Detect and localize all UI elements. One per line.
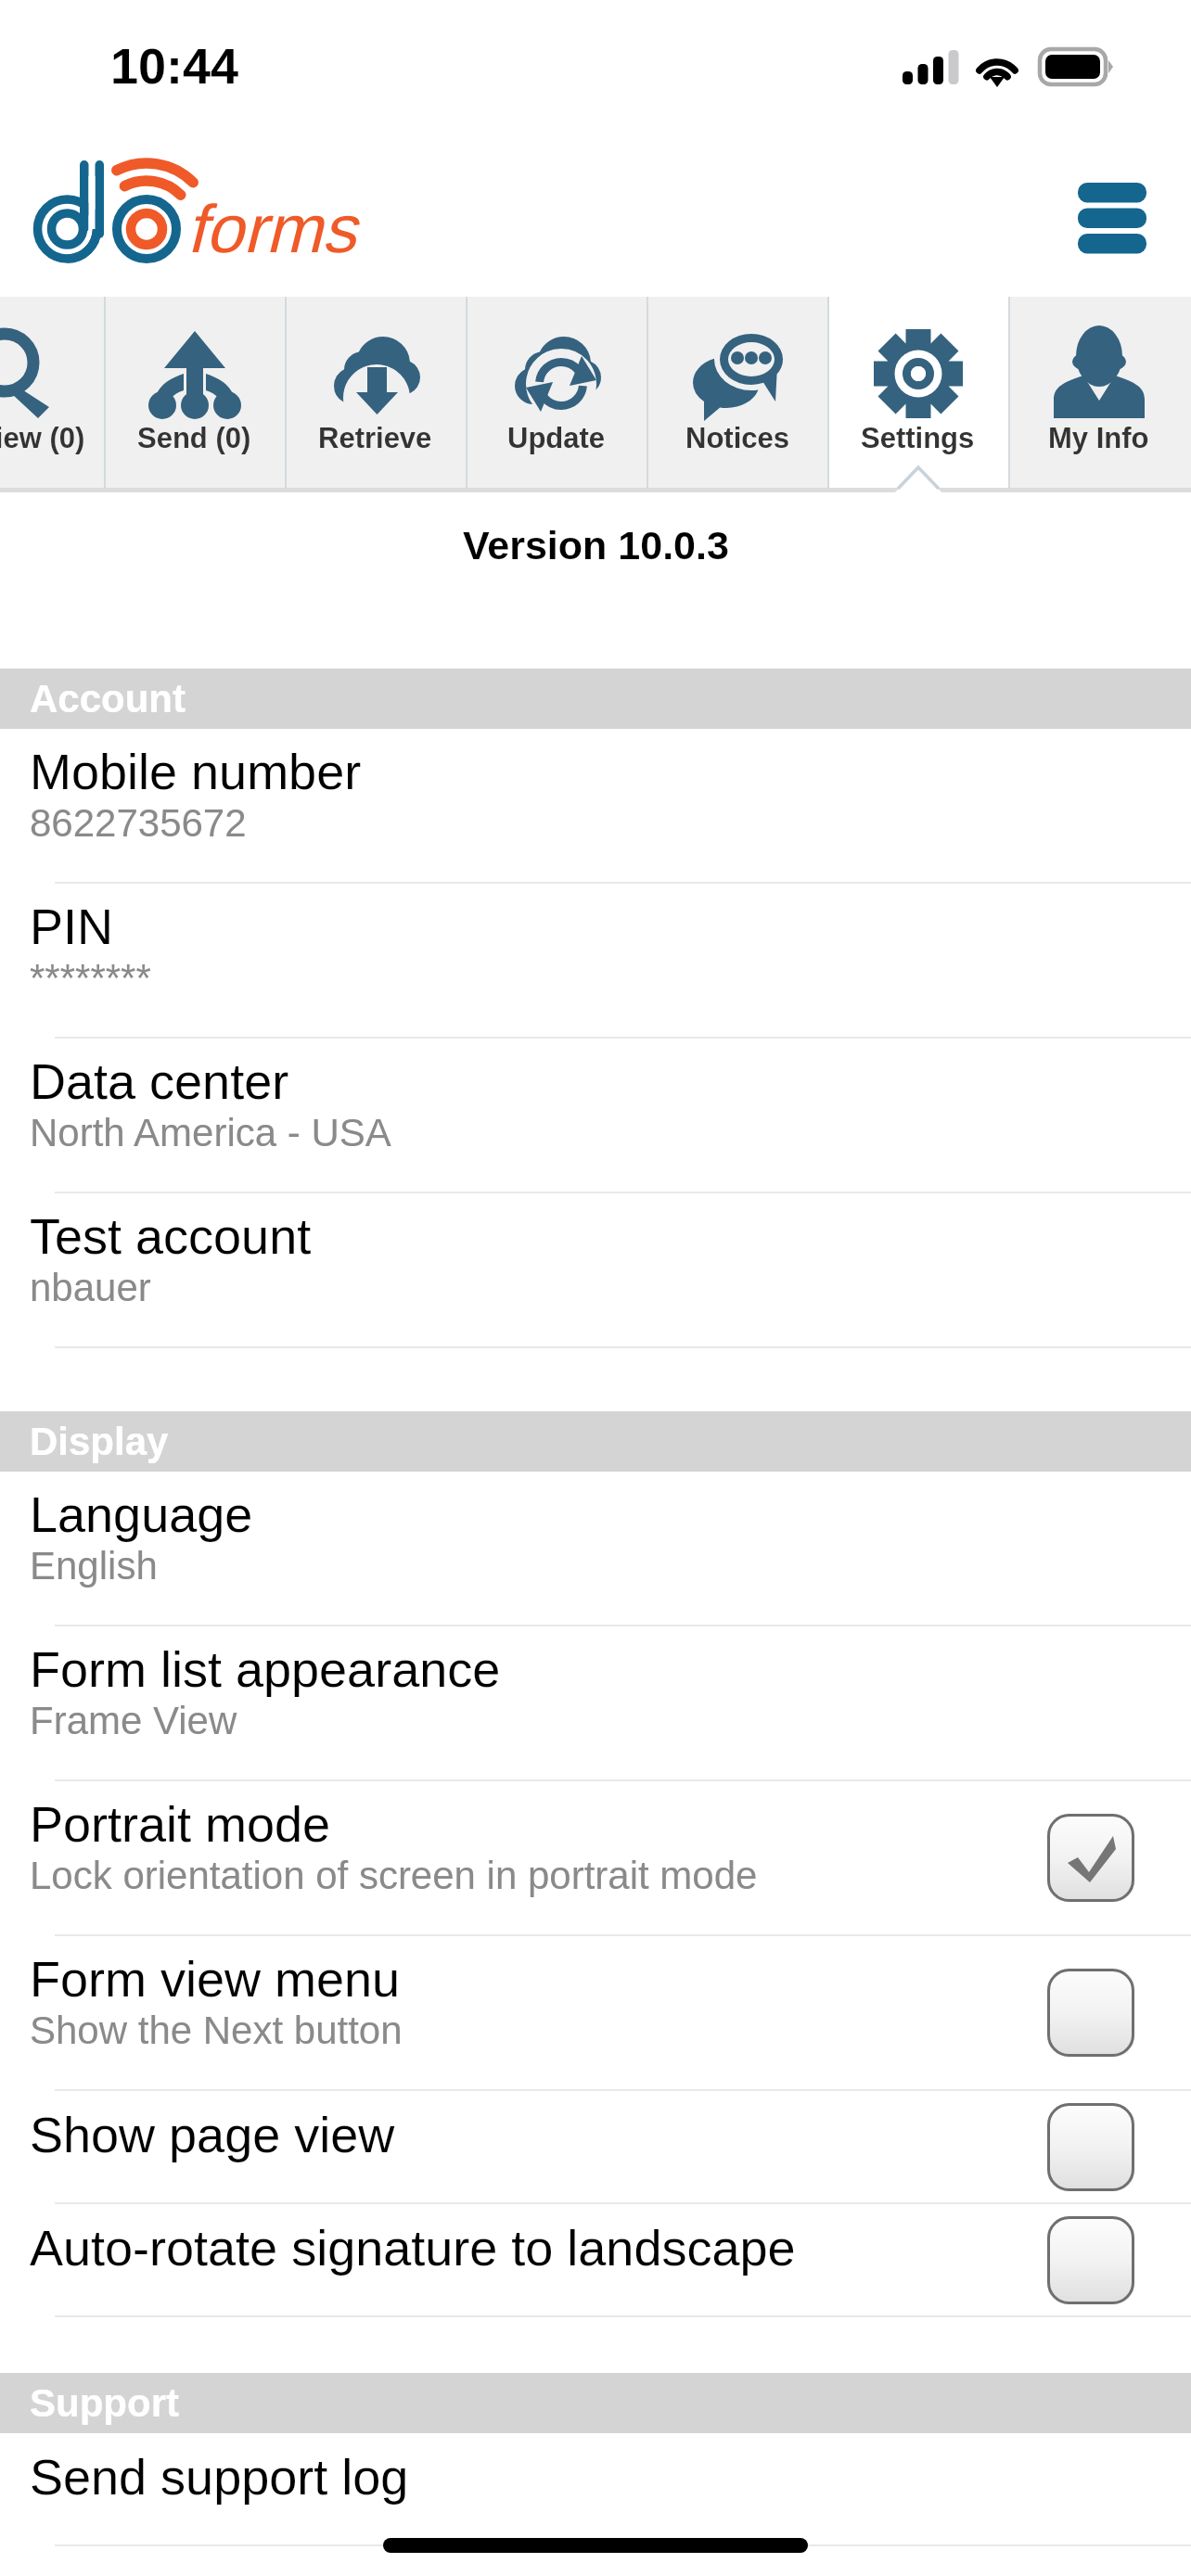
button[interactable]: Notices xyxy=(647,297,827,492)
button[interactable]: Mobile number xyxy=(0,729,1191,884)
button[interactable]: Auto-rotate signature to landscape xyxy=(1047,2216,1134,2304)
button[interactable]: Update xyxy=(466,297,647,492)
staticText: Portrait mode xyxy=(30,1796,331,1852)
button[interactable]: My Info xyxy=(1008,297,1189,492)
staticText: Form list appearance xyxy=(30,1641,501,1697)
staticText: Show page view xyxy=(30,2107,395,2162)
staticText: Form view menu xyxy=(30,1951,401,2007)
staticText: Show the Next button xyxy=(30,2009,403,2052)
button[interactable]: Form view menu xyxy=(1047,1969,1134,2057)
staticText: Update xyxy=(507,422,606,454)
staticText: nbauer xyxy=(30,1266,151,1309)
staticText: Notices xyxy=(685,422,789,454)
button[interactable]: Show page view xyxy=(0,2091,1191,2204)
staticText: Display xyxy=(30,1420,169,1463)
staticText: 10:44 xyxy=(110,38,239,94)
staticText: My Info xyxy=(1048,422,1149,454)
button[interactable]: Portrait mode xyxy=(1047,1814,1134,1902)
staticText: Test account xyxy=(30,1208,312,1264)
button[interactable]: Settings xyxy=(827,297,1008,492)
staticText: Lock orientation of screen in portrait m… xyxy=(30,1854,758,1897)
staticText: Data center xyxy=(30,1053,289,1109)
staticText: Send support log xyxy=(30,2449,409,2505)
button[interactable]: Menu xyxy=(1057,162,1168,274)
button[interactable]: Show page view xyxy=(1047,2103,1134,2191)
button[interactable]: Review (0) xyxy=(0,297,104,492)
staticText: Language xyxy=(30,1486,253,1542)
staticText: forms xyxy=(186,191,356,267)
button[interactable]: Form view menu xyxy=(0,1936,1191,2091)
staticText: PIN xyxy=(30,899,114,954)
staticText: Settings xyxy=(861,422,975,454)
staticText: Version 10.0.3 xyxy=(463,523,729,567)
button[interactable]: Data center xyxy=(0,1039,1191,1193)
button[interactable]: Form list appearance xyxy=(0,1626,1191,1781)
button[interactable]: Send (0) xyxy=(104,297,285,492)
staticText: English xyxy=(30,1544,158,1588)
button[interactable]: Test account xyxy=(0,1193,1191,1348)
button[interactable]: Portrait mode xyxy=(0,1781,1191,1936)
staticText: North America - USA xyxy=(30,1111,391,1154)
staticText: 8622735672 xyxy=(30,801,247,845)
button[interactable]: Send support log xyxy=(0,2433,1191,2546)
button[interactable]: Retrieve xyxy=(285,297,466,492)
button[interactable]: Language xyxy=(0,1472,1191,1626)
staticText: Retrieve xyxy=(318,422,432,454)
button[interactable]: PIN xyxy=(0,884,1191,1039)
button[interactable]: Auto-rotate signature to landscape xyxy=(0,2204,1191,2317)
staticText: Support xyxy=(30,2381,179,2425)
staticText: Send (0) xyxy=(137,422,251,454)
staticText: ******** xyxy=(30,956,151,1000)
staticText: Mobile number xyxy=(30,744,362,799)
staticText: Account xyxy=(30,677,186,721)
staticText: Frame View xyxy=(30,1699,237,1742)
staticText: Auto-rotate signature to landscape xyxy=(30,2220,796,2276)
staticText: Review (0) xyxy=(0,422,85,454)
